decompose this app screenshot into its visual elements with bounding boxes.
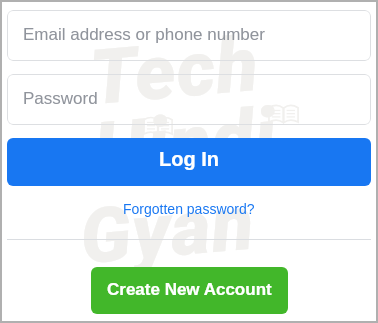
staticText: Email address or phone number xyxy=(23,25,265,44)
button[interactable]: Password xyxy=(7,74,371,125)
staticText: Password xyxy=(23,89,98,108)
button[interactable]: Email address or phone number xyxy=(7,10,371,61)
staticText: Hindi xyxy=(90,90,281,195)
staticText: Gyan xyxy=(76,177,259,281)
staticText: Tech xyxy=(86,19,263,122)
staticText: Log In xyxy=(159,148,219,170)
button[interactable]: Create New Account xyxy=(91,267,288,314)
staticText: Create New Account xyxy=(107,280,272,299)
button[interactable]: Forgotten password? xyxy=(117,198,261,220)
staticText: Forgotten password? xyxy=(123,201,255,217)
button[interactable]: Log In xyxy=(7,138,371,186)
